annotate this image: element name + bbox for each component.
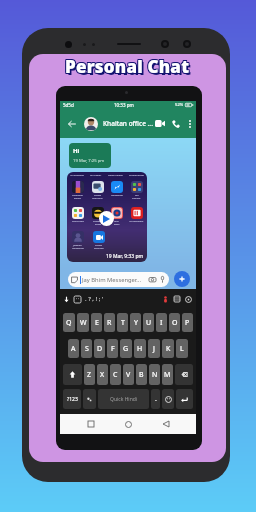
staticText: U <box>146 318 152 328</box>
staticText: YNVodafone <box>70 173 84 176</box>
button[interactable]: S <box>81 339 92 358</box>
staticText: 19 Mar, 9:33 pm <box>106 253 144 260</box>
button[interactable]: R <box>104 313 115 332</box>
staticText: K <box>166 344 171 354</box>
button[interactable]: U <box>143 313 154 332</box>
staticText: . <box>155 394 157 404</box>
staticText: Y <box>134 318 138 328</box>
staticText: N <box>152 370 158 380</box>
button[interactable]: L <box>176 339 188 358</box>
staticText: Personal Chat <box>64 54 189 77</box>
staticText: Tech <box>114 220 119 223</box>
button[interactable]: B <box>136 364 147 385</box>
button[interactable]: V <box>123 364 134 385</box>
button[interactable]: A <box>68 339 79 358</box>
button[interactable]: J <box>148 339 160 358</box>
button[interactable] <box>162 389 174 409</box>
button[interactable]: ?123 <box>63 389 81 409</box>
staticText: Q <box>66 318 72 328</box>
button[interactable]: Video call <box>153 117 166 130</box>
staticText: B <box>139 370 144 380</box>
button[interactable]: Jay Bhim Messenger... <box>68 272 169 287</box>
staticText: I <box>160 318 163 328</box>
button[interactable]: . <box>151 389 160 409</box>
button[interactable] <box>175 364 193 385</box>
staticText: 10:33 pm <box>114 102 134 108</box>
button[interactable]: D <box>94 339 105 358</box>
button[interactable]: Home <box>121 417 135 431</box>
staticText: Messenger <box>111 194 123 197</box>
staticText: W <box>80 318 87 328</box>
button[interactable]: X <box>97 364 108 385</box>
staticText: O <box>172 318 178 328</box>
button[interactable] <box>83 389 96 409</box>
button[interactable]: Contact photo <box>84 117 98 131</box>
button[interactable]: Send <box>174 271 190 287</box>
staticText: JayBhim <box>73 244 82 247</box>
staticText: PhonePeWeb <box>129 173 144 176</box>
staticText: Quick Hindi <box>110 396 138 403</box>
staticText: PhotoApps <box>72 220 84 223</box>
staticText: D <box>97 344 103 354</box>
staticText: Camera <box>132 197 141 200</box>
button[interactable]: C <box>110 364 121 385</box>
button[interactable]: Z <box>84 364 95 385</box>
staticText: Screen <box>95 244 103 247</box>
staticText: Wallpaper <box>72 194 83 197</box>
button[interactable]: W <box>77 313 89 332</box>
staticText: MX Player <box>90 173 102 176</box>
button[interactable]: N <box>149 364 160 385</box>
staticText: Personal Chat <box>64 55 189 78</box>
button[interactable]: Quick Hindi <box>98 389 149 409</box>
button[interactable]: F <box>107 339 118 358</box>
staticText: Mirroring <box>92 197 103 200</box>
button[interactable]: Y <box>130 313 141 332</box>
staticText: Hi <box>73 147 80 155</box>
button[interactable]: M <box>162 364 173 385</box>
staticText: S <box>85 344 89 354</box>
staticText: Jay Bhim Messenger... <box>82 276 141 284</box>
button[interactable]: H <box>134 339 146 358</box>
button[interactable]: P <box>182 313 193 332</box>
button[interactable]: Call <box>169 117 182 130</box>
button[interactable]: K <box>162 339 174 358</box>
button[interactable] <box>176 389 193 409</box>
button[interactable]: Back <box>66 118 78 130</box>
staticText: Recorder <box>94 247 104 250</box>
button[interactable]: E <box>91 313 102 332</box>
button[interactable]: More options <box>184 118 195 129</box>
staticText: L <box>180 344 184 354</box>
staticText: R <box>107 318 112 328</box>
button[interactable]: Play video <box>99 211 114 226</box>
staticText: Emoji <box>95 223 101 226</box>
staticText: Z <box>87 370 92 380</box>
staticText: ?123 <box>67 396 78 403</box>
button[interactable]: Q <box>63 313 75 332</box>
staticText: V <box>126 370 131 380</box>
button[interactable] <box>63 364 82 385</box>
staticText: . ? , ! ; ' <box>85 295 104 303</box>
button[interactable]: G <box>120 339 132 358</box>
staticText: J <box>153 344 155 354</box>
staticText: Sunglass <box>93 220 103 223</box>
button[interactable]: O <box>169 313 180 332</box>
staticText: E <box>95 318 99 328</box>
staticText: Ion <box>135 194 139 197</box>
staticText: M <box>164 370 171 380</box>
staticText: Expert <box>74 197 81 200</box>
staticText: G <box>123 344 129 354</box>
staticText: Personal Chat <box>67 57 192 80</box>
button[interactable]: Recents <box>84 417 98 431</box>
button[interactable]: I <box>156 313 167 332</box>
staticText: Personal Chat <box>64 56 189 79</box>
button[interactable]: Back <box>159 417 173 431</box>
staticText: YTMessenger <box>129 220 144 223</box>
button[interactable]: T <box>117 313 128 332</box>
staticText: X <box>100 370 105 380</box>
staticText: C <box>113 370 118 380</box>
staticText: H <box>137 344 143 354</box>
staticText: A <box>71 344 76 354</box>
staticText: Personal Chat <box>65 54 190 77</box>
staticText: 5d5d <box>63 102 74 108</box>
staticText: Personal Chat <box>66 54 191 77</box>
